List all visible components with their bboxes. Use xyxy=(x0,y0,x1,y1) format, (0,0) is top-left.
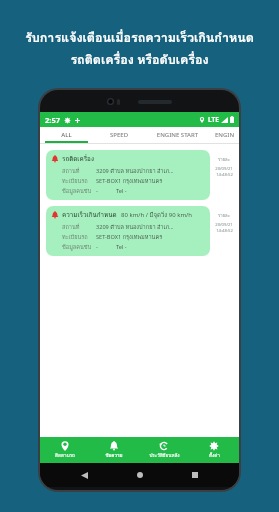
staticText: ข้อมูลคนขับ xyxy=(62,243,92,252)
staticText: ความเร็วเกินกำหนด xyxy=(62,210,117,220)
staticText: สถานที่ xyxy=(62,223,80,232)
staticText: 14:48:52 xyxy=(216,228,233,234)
staticText: LTE xyxy=(208,115,219,124)
button[interactable]: ประวัติย้อนหลัง xyxy=(139,437,189,463)
staticText: SET-BOX1 กรุงเทพมหานคร xyxy=(96,177,163,186)
button[interactable]: Home xyxy=(130,465,150,485)
staticText: ALL xyxy=(40,131,93,139)
staticText: 3209 ตำบล หนองปากยา อำเภ... xyxy=(96,167,174,176)
staticText: Tel - xyxy=(116,187,127,195)
staticText: รายละ xyxy=(218,212,230,219)
staticText: ENGINE START xyxy=(145,131,210,139)
staticText: ทะเบียนรถ xyxy=(62,233,88,242)
staticText: SET-BOX1 กรุงเทพมหานคร xyxy=(96,233,163,242)
button[interactable]: ความเร็วเกินกำหนด xyxy=(46,206,236,256)
staticText: รายละ xyxy=(218,156,230,163)
button[interactable]: ENGIN xyxy=(210,127,239,143)
staticText: ประวัติย้อนหลัง xyxy=(149,452,180,459)
button[interactable]: Back xyxy=(74,465,94,485)
staticText: SPEED xyxy=(93,131,145,139)
staticText: ติดตามรถ xyxy=(55,452,75,459)
button[interactable]: ALL xyxy=(40,127,93,143)
staticText: - xyxy=(96,187,98,195)
staticText: - xyxy=(96,243,98,251)
button[interactable]: ติดตามรถ xyxy=(40,437,89,463)
staticText: 2:57 xyxy=(45,115,60,125)
button[interactable]: ข้อความ xyxy=(89,437,139,463)
staticText: ข้อความ xyxy=(105,452,123,459)
staticText: สถานที่ xyxy=(62,167,80,176)
staticText: Tel - xyxy=(116,243,127,251)
button[interactable]: SPEED xyxy=(93,127,145,143)
staticText: รถติดเครื่อง หรือดับเครื่อง xyxy=(70,50,209,70)
staticText: ENGIN xyxy=(210,131,239,139)
staticText: 20/09/21 xyxy=(215,166,233,172)
staticText: 80 km/h / มีจุดวิ่ง 90 km/h xyxy=(121,210,192,220)
staticText: ตั้งค่า xyxy=(209,452,220,459)
button[interactable]: รถติดเครื่อง xyxy=(46,150,236,200)
staticText: 3209 ตำบล หนองปากยา อำเภ... xyxy=(96,223,174,232)
staticText: ข้อมูลคนขับ xyxy=(62,187,92,196)
staticText: รับการแจ้งเตือนเมื่อรถความเร็วเกินกำหนด xyxy=(25,28,254,48)
staticText: รถติดเครื่อง xyxy=(62,154,94,164)
button[interactable]: ENGINE START xyxy=(145,127,210,143)
staticText: 14:48:52 xyxy=(216,172,233,178)
button[interactable]: Recents xyxy=(185,465,205,485)
button[interactable]: ตั้งค่า xyxy=(189,437,239,463)
staticText: 20/09/21 xyxy=(215,222,233,228)
staticText: ทะเบียนรถ xyxy=(62,177,88,186)
